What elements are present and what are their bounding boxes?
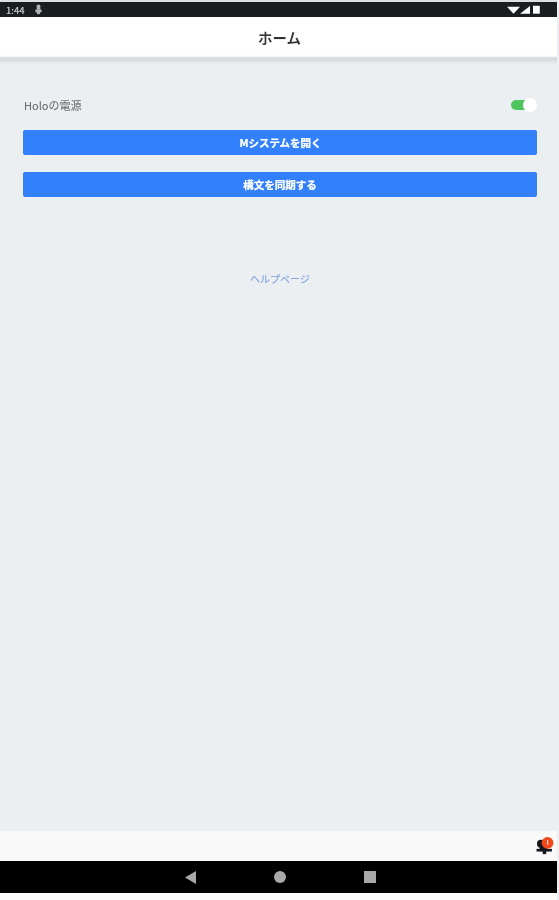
- staticText: Holoの電源: [24, 97, 82, 113]
- button[interactable]: Back: [160, 861, 220, 893]
- staticText: Mシステムを開く: [239, 135, 322, 150]
- staticText: ホーム: [258, 27, 302, 48]
- button[interactable]: 構文を同期する: [23, 172, 537, 197]
- staticText: 1:44: [6, 3, 25, 17]
- staticText: 構文を同期する: [243, 177, 317, 192]
- button[interactable]: Holoの電源 切り替え: [505, 93, 539, 117]
- button[interactable]: Recents: [340, 861, 400, 893]
- button[interactable]: Holoの電源: [24, 88, 539, 121]
- button[interactable]: ヘルプページ: [244, 267, 316, 289]
- button[interactable]: Notifications: [533, 835, 555, 857]
- button[interactable]: Mシステムを開く: [23, 130, 537, 155]
- button[interactable]: Home: [250, 861, 310, 893]
